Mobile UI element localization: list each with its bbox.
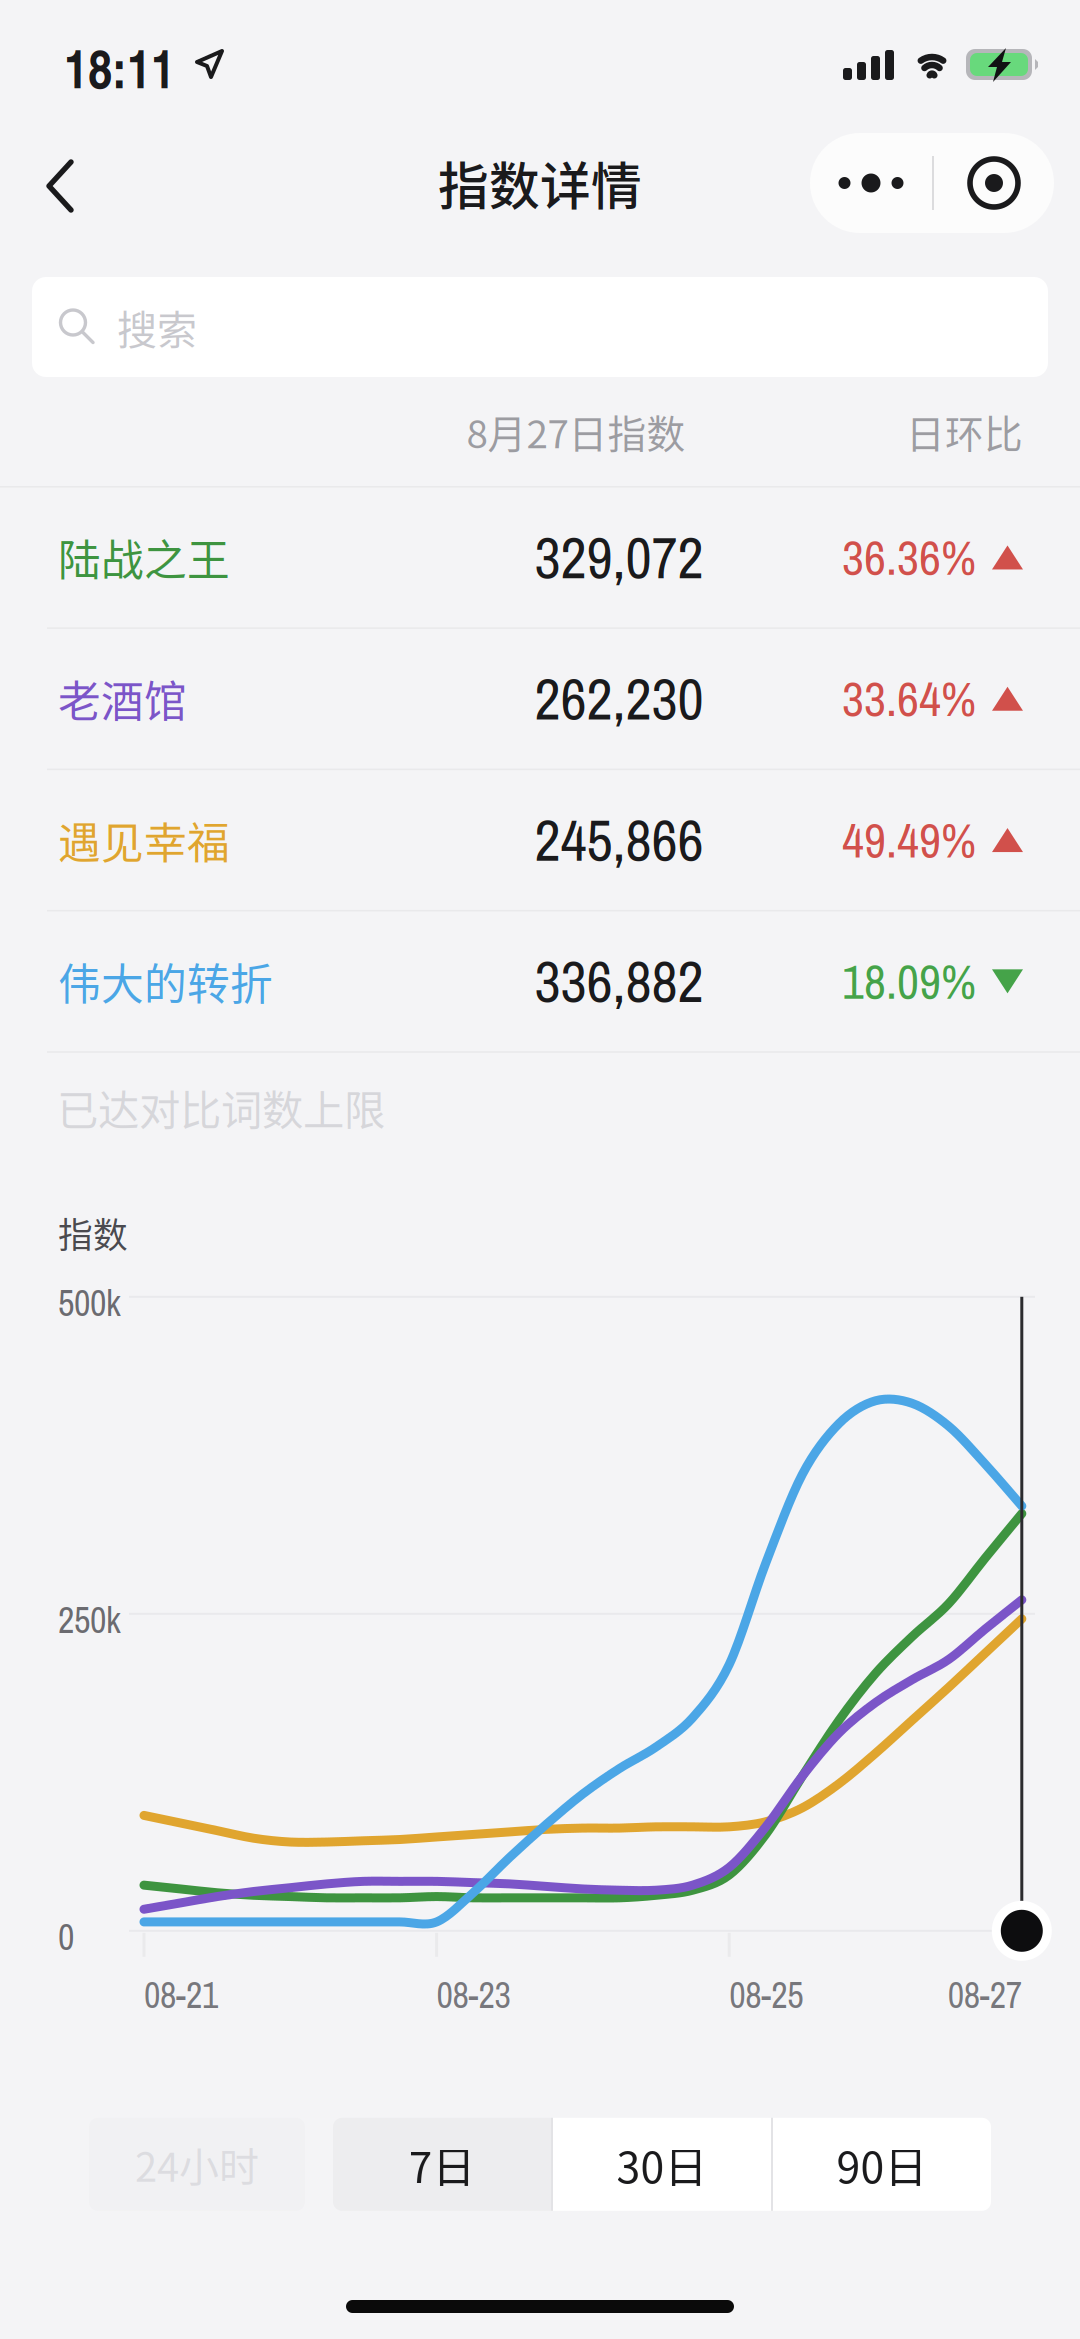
staticText: 08-23 [437,1971,511,2019]
staticText: 08-21 [144,1971,218,2019]
button[interactable]: 伟大的转折 [0,911,1080,1051]
button[interactable]: 陆战之王 [0,488,1080,627]
button[interactable]: Close mini program [934,133,1054,233]
button[interactable]: 7日 [333,2118,551,2211]
staticText: 8月27日指数 [466,403,685,459]
button[interactable]: 老酒馆 [0,629,1080,769]
staticText: 0 [58,1913,74,1961]
staticText: 250k [58,1596,121,1644]
staticText: 08-27 [948,1971,1022,2019]
staticText: 搜索 [117,298,197,356]
staticText: 陆战之王 [58,527,230,588]
button[interactable]: 90日 [773,2118,991,2211]
button[interactable]: 遇见幸福 [0,770,1080,910]
staticText: 已达对比词数上限 [57,1077,385,1137]
button[interactable]: 30日 [553,2118,771,2211]
staticText: 262,230 [534,660,703,737]
staticText: 18.09% [842,949,976,1014]
button[interactable]: Back [20,124,106,242]
staticText: 33.64% [842,666,976,731]
staticText: 指数详情 [438,146,642,220]
staticText: 245,866 [534,801,703,879]
staticText: 指数 [58,1208,128,1258]
staticText: 36.36% [842,525,976,590]
staticText: 18:11 [64,29,175,105]
staticText: 7日 [408,2133,475,2195]
staticText: 日环比 [906,403,1023,459]
staticText: 90日 [836,2133,927,2195]
button[interactable]: 24小时 [89,2118,305,2211]
button[interactable]: More [810,133,932,233]
staticText: 30日 [616,2133,707,2195]
staticText: 329,072 [534,519,703,596]
button[interactable]: 搜索 [32,277,1048,377]
staticText: 24小时 [135,2135,259,2193]
staticText: 500k [58,1279,121,1327]
staticText: 遇见幸福 [58,809,230,871]
staticText: 49.49% [842,808,976,872]
staticText: 336,882 [534,943,703,1020]
staticText: 老酒馆 [58,668,187,730]
staticText: 伟大的转折 [58,950,273,1012]
staticText: 08-25 [729,1971,803,2019]
